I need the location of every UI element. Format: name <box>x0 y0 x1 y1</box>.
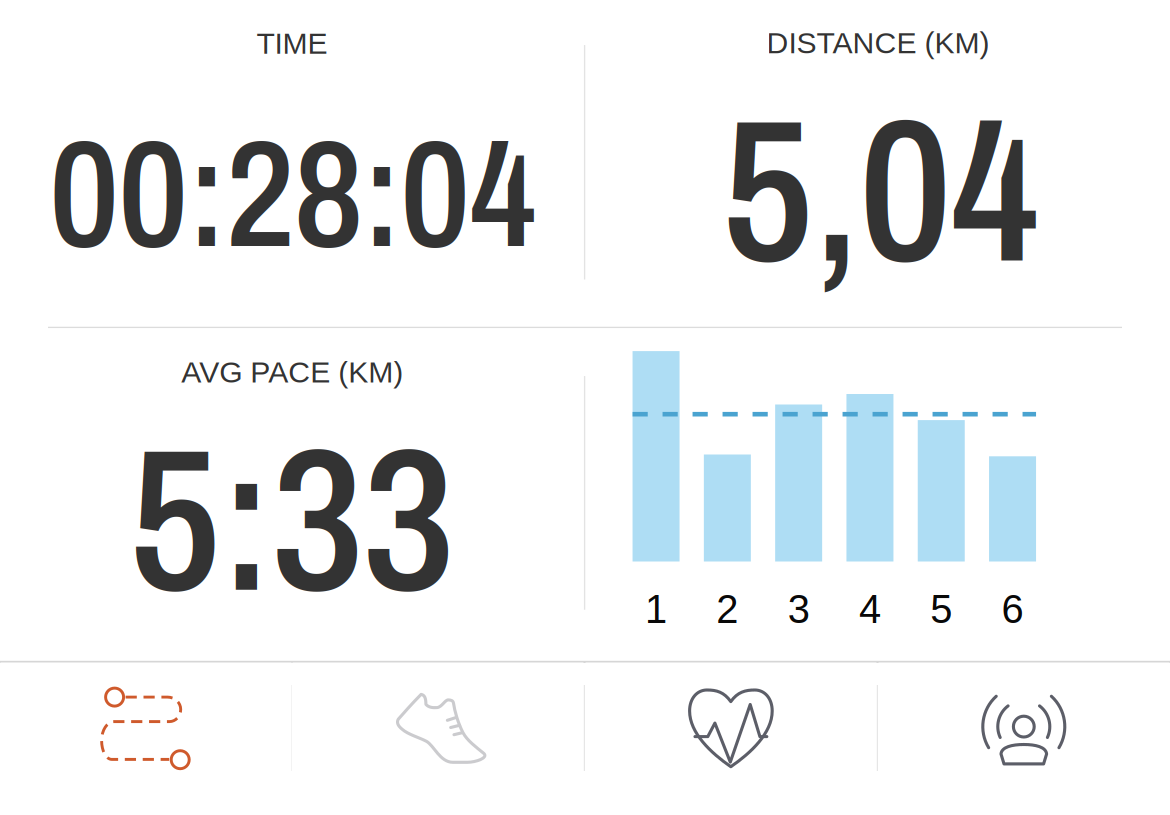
staticText: 3 <box>788 587 810 631</box>
staticText: DISTANCE (KM) <box>766 26 989 60</box>
button[interactable]: Activity <box>292 662 583 814</box>
staticText: 5,04 <box>722 85 1040 302</box>
button[interactable]: Live tracking <box>878 662 1169 814</box>
staticText: TIME <box>256 26 327 60</box>
staticText: 00:28:04 <box>50 114 537 278</box>
staticText: 6 <box>1001 587 1023 631</box>
staticText: 2 <box>716 587 738 631</box>
staticText: AVG PACE (KM) <box>181 355 403 389</box>
button[interactable]: Route <box>0 662 291 814</box>
staticText: 5 <box>930 587 952 631</box>
button[interactable]: Heart rate <box>585 662 876 814</box>
staticText: 4 <box>859 587 881 631</box>
staticText: 5:33 <box>129 414 454 632</box>
staticText: 1 <box>645 587 667 631</box>
